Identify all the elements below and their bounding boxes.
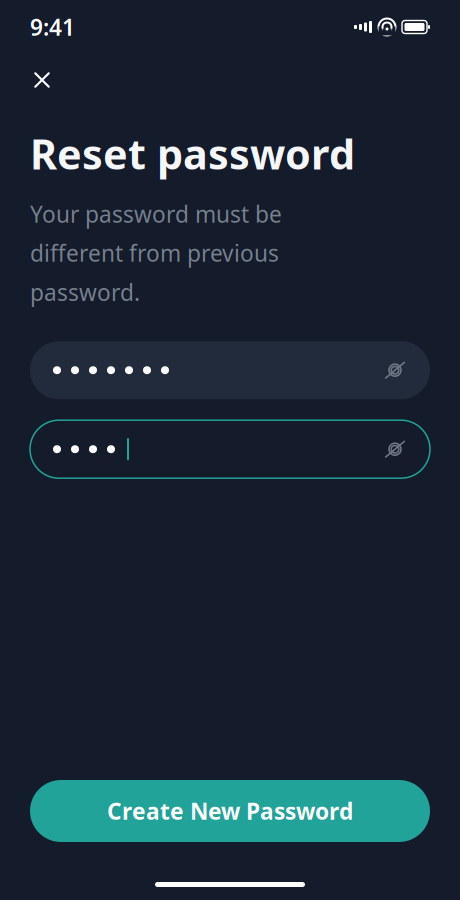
button[interactable]: Create New Password xyxy=(30,780,430,842)
staticText: Your password must be different from pre… xyxy=(30,199,282,307)
button[interactable]: Close xyxy=(20,58,64,102)
staticText: Reset password xyxy=(30,126,355,181)
button[interactable]: Show password xyxy=(378,353,412,387)
button[interactable]: Show password xyxy=(378,432,412,466)
staticText: Create New Password xyxy=(107,796,353,826)
staticText: 9:41 xyxy=(30,12,75,42)
